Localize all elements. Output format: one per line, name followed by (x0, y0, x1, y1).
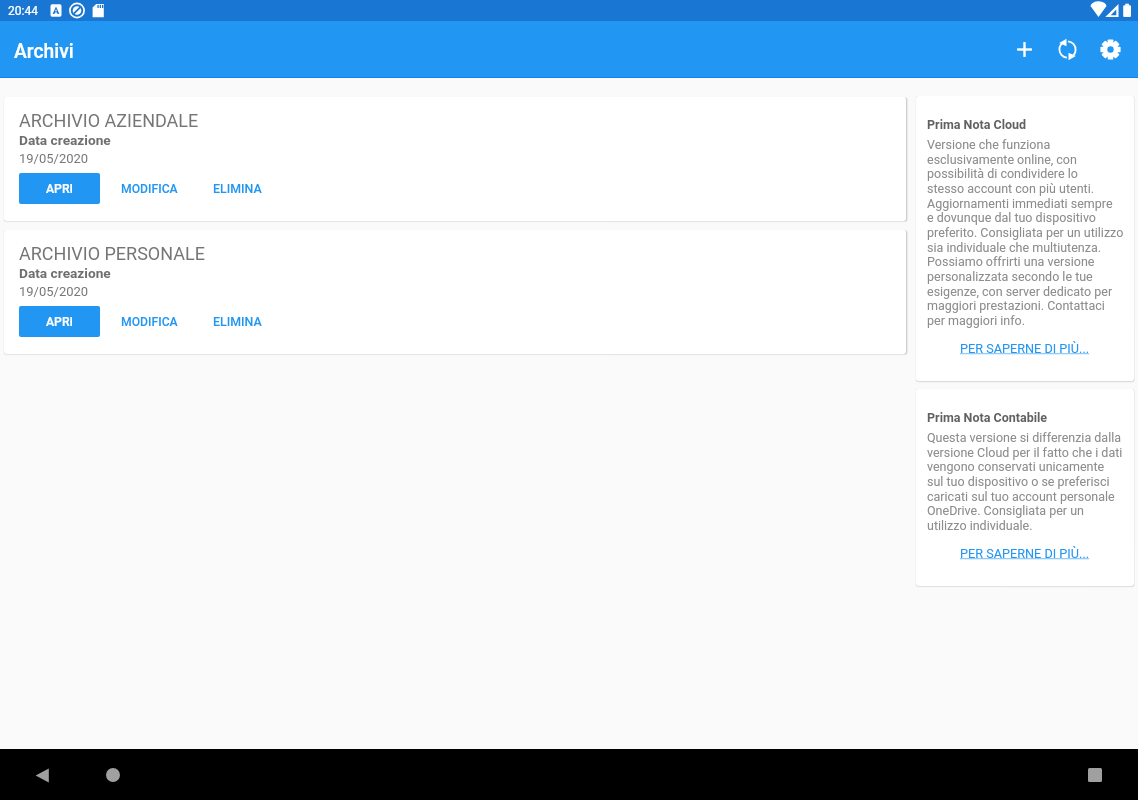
staticText: maggiori prestazioni. Contattaci (927, 298, 1105, 313)
staticText: Versione che funziona (927, 137, 1051, 152)
button[interactable]: PER SAPERNE DI PIÙ... (916, 341, 1134, 356)
staticText: sul tuo dispositivo o se preferisci (927, 474, 1110, 489)
staticText: APRI (46, 315, 73, 329)
staticText: PER SAPERNE DI PIÙ... (960, 546, 1090, 561)
staticText: e dovunque dal tuo dispositivo (927, 210, 1096, 225)
staticText: Questa versione si differenzia dalla (927, 430, 1122, 445)
staticText: 19/05/2020 (19, 284, 89, 299)
staticText: Data creazione (19, 265, 111, 281)
staticText: PER SAPERNE DI PIÙ... (960, 341, 1090, 356)
staticText: Aggiornamenti immediati sempre (927, 196, 1113, 211)
button[interactable]: ELIMINA (197, 173, 282, 204)
staticText: per maggiori info. (927, 313, 1026, 328)
staticText: MODIFICA (121, 182, 178, 196)
staticText: MODIFICA (121, 315, 178, 329)
button[interactable]: Recent apps (1074, 754, 1116, 796)
button[interactable]: Home (92, 754, 134, 796)
staticText: personalizzata secondo le tue (927, 269, 1093, 284)
staticText: possibilità di condividere lo (927, 166, 1078, 181)
staticText: Data creazione (19, 132, 111, 148)
button[interactable]: PER SAPERNE DI PIÙ... (916, 546, 1134, 561)
staticText: APRI (46, 182, 73, 196)
button[interactable]: APRI (19, 306, 100, 337)
button[interactable]: Add new archive (1003, 28, 1046, 71)
staticText: OneDrive. Consigliata per un (927, 503, 1084, 518)
button[interactable]: Back (21, 754, 63, 796)
staticText: Archivi (14, 40, 74, 63)
staticText: esigenze, con server dedicato per (927, 284, 1113, 299)
staticText: ELIMINA (213, 181, 262, 196)
staticText: ARCHIVIO PERSONALE (19, 243, 205, 264)
button[interactable]: ELIMINA (197, 306, 282, 337)
staticText: vengono conservati unicamente (927, 459, 1105, 474)
staticText: sia individuale che multiutenza. (927, 240, 1102, 255)
staticText: esclusivamente online, con (927, 152, 1077, 167)
staticText: 20:44 (8, 4, 38, 18)
button[interactable]: MODIFICA (100, 173, 197, 204)
staticText: stesso account con più utenti. (927, 181, 1094, 196)
staticText: Prima Nota Contabile (927, 410, 1048, 425)
staticText: ARCHIVIO AZIENDALE (19, 110, 199, 131)
staticText: Possiamo offrirti una versione (927, 254, 1095, 269)
staticText: preferito. Consigliata per un utilizzo (927, 225, 1124, 240)
staticText: utilizzo individuale. (927, 518, 1033, 533)
staticText: ELIMINA (213, 314, 262, 329)
button[interactable]: MODIFICA (100, 306, 197, 337)
staticText: versione Cloud per il fatto che i dati (927, 445, 1123, 460)
staticText: 19/05/2020 (19, 151, 89, 166)
button[interactable]: Synchronize (1046, 28, 1089, 71)
staticText: Prima Nota Cloud (927, 117, 1027, 132)
button[interactable]: Settings (1089, 28, 1132, 71)
button[interactable]: APRI (19, 173, 100, 204)
staticText: caricati sul tuo account personale (927, 489, 1115, 504)
